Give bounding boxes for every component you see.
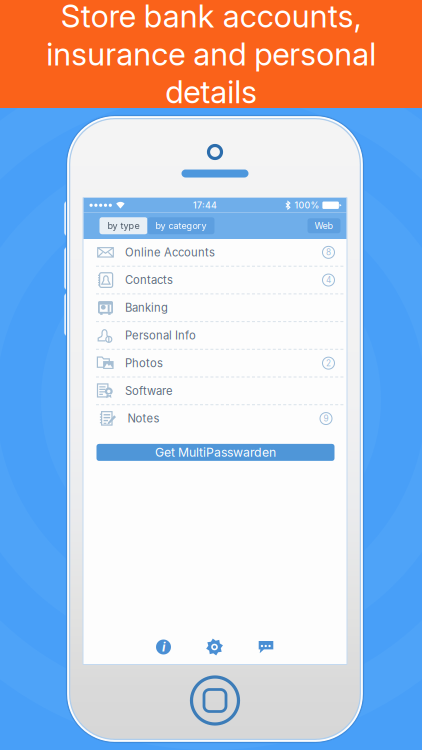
- staticText: Banking: [125, 301, 168, 315]
- staticText: 100%: [294, 200, 319, 210]
- staticText: 4: [326, 275, 331, 285]
- staticText: 17:44: [193, 200, 217, 210]
- button[interactable]: Get MultiPasswarden: [96, 444, 334, 461]
- button[interactable]: Photos: [81, 350, 349, 377]
- staticText: 9: [323, 413, 328, 423]
- button[interactable]: Settings: [205, 638, 223, 656]
- staticText: Web: [314, 220, 333, 231]
- button[interactable]: Notes: [83, 405, 346, 433]
- staticText: Store bank accounts, insurance and perso…: [46, 0, 376, 111]
- staticText: Get MultiPasswarden: [155, 445, 276, 460]
- button[interactable]: Contacts: [81, 267, 349, 294]
- staticText: by type: [107, 220, 139, 231]
- staticText: by category: [155, 220, 206, 231]
- staticText: 2: [326, 358, 331, 368]
- button[interactable]: by type: [99, 217, 147, 234]
- button[interactable]: Banking: [81, 294, 349, 322]
- staticText: Contacts: [125, 273, 173, 287]
- staticText: Online Accounts: [125, 246, 215, 259]
- button[interactable]: Info: [154, 638, 172, 656]
- button[interactable]: Online Accounts: [81, 239, 349, 267]
- button[interactable]: Web: [307, 218, 340, 233]
- staticText: Personal Info: [125, 329, 196, 342]
- button[interactable]: Personal Info: [81, 322, 349, 350]
- staticText: 8: [326, 247, 331, 257]
- button[interactable]: Feedback: [256, 638, 275, 656]
- staticText: i: [162, 639, 165, 655]
- button[interactable]: by category: [147, 217, 214, 234]
- staticText: Software: [125, 384, 173, 398]
- staticText: Photos: [125, 356, 163, 370]
- button[interactable]: Software: [81, 377, 349, 405]
- staticText: Notes: [127, 412, 159, 425]
